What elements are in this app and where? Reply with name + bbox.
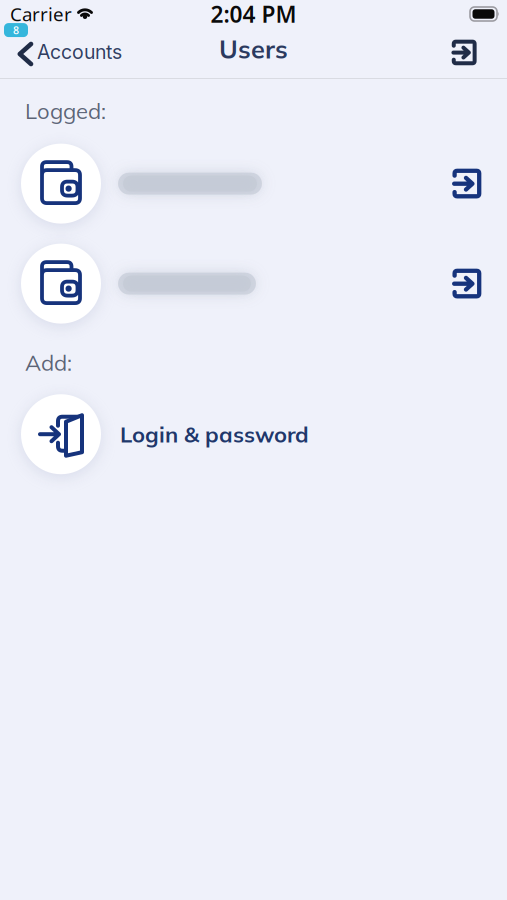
staticText: 8 [13, 23, 19, 37]
button[interactable]: Login & password [0, 394, 507, 474]
staticText: 2:04 PM [210, 0, 296, 29]
staticText: Login & password [120, 420, 309, 448]
staticText: Carrier [10, 2, 72, 26]
button[interactable]: Account [21, 244, 449, 324]
staticText: Logged: [25, 97, 106, 125]
button[interactable]: Account [21, 144, 449, 224]
staticText: Users [219, 33, 288, 65]
staticText: Add: [25, 349, 72, 376]
button[interactable]: Log out [449, 167, 484, 200]
button[interactable]: Log in [449, 37, 479, 65]
staticText: Accounts [37, 40, 122, 64]
button[interactable]: Accounts [16, 38, 122, 63]
button[interactable]: Log out [449, 267, 484, 300]
